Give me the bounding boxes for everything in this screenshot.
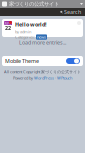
staticText: WordPress [34,75,54,81]
staticText: Powered by [13,75,33,81]
staticText: All content Copyright 家づくりの公式サイト [4,69,81,74]
staticText: Search [64,8,81,16]
button[interactable]: JUN [2,19,83,37]
staticText: 家づくりの公式サイト [9,1,59,7]
staticText: Categories: [15,34,35,40]
staticText: Mobile Theme [5,57,39,65]
button[interactable]: Show menu [80,3,83,5]
button[interactable]: Search [60,8,85,16]
staticText: JUN [4,20,11,26]
staticText: 22 [5,24,11,32]
staticText: WPtouch [57,75,72,81]
button[interactable]: Mobile Theme on [66,58,80,64]
button[interactable]: WordPress [34,75,54,81]
button[interactable]: WPtouch [57,75,72,81]
staticText: · [55,75,56,81]
staticText: Hello world! [15,21,47,28]
staticText: Load more entries... [19,39,66,46]
button[interactable]: Load more entries... [0,40,85,45]
staticText: by admin [15,29,31,34]
staticText: news [37,34,46,40]
